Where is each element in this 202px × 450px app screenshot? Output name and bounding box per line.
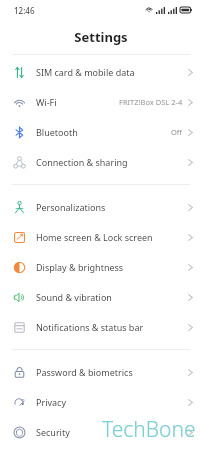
button[interactable]: Privacy: [0, 387, 202, 417]
button[interactable]: Bluetooth: [0, 117, 202, 147]
button[interactable]: Wi-Fi: [0, 87, 202, 117]
button[interactable]: Display & brightness: [0, 252, 202, 282]
staticText: Display & brightness: [36, 261, 124, 273]
staticText: Personalizations: [36, 201, 106, 213]
button[interactable]: Notifications & status bar: [0, 312, 202, 342]
staticText: TechBone: [102, 415, 196, 444]
staticText: Security: [36, 426, 70, 438]
staticText: Off: [171, 127, 183, 137]
button[interactable]: Sound & vibration: [0, 282, 202, 312]
staticText: Bluetooth: [36, 126, 78, 138]
staticText: Settings: [74, 28, 128, 46]
staticText: FRITZ!Box DSL 2-4: [119, 97, 183, 107]
button[interactable]: Home screen & Lock screen: [0, 222, 202, 252]
button[interactable]: Password & biometrics: [0, 357, 202, 387]
button[interactable]: SIM card & mobile data: [0, 57, 202, 87]
staticText: Connection & sharing: [36, 156, 128, 168]
staticText: Home screen & Lock screen: [36, 231, 153, 243]
staticText: Wi-Fi: [36, 96, 57, 108]
staticText: Password & biometrics: [36, 366, 133, 378]
staticText: SIM card & mobile data: [36, 66, 135, 78]
button[interactable]: Personalizations: [0, 192, 202, 222]
button[interactable]: Security: [0, 417, 202, 447]
button[interactable]: Connection & sharing: [0, 147, 202, 177]
staticText: Notifications & status bar: [36, 321, 144, 333]
staticText: 12:46: [14, 5, 35, 16]
staticText: Sound & vibration: [36, 291, 112, 303]
staticText: Privacy: [36, 396, 67, 408]
